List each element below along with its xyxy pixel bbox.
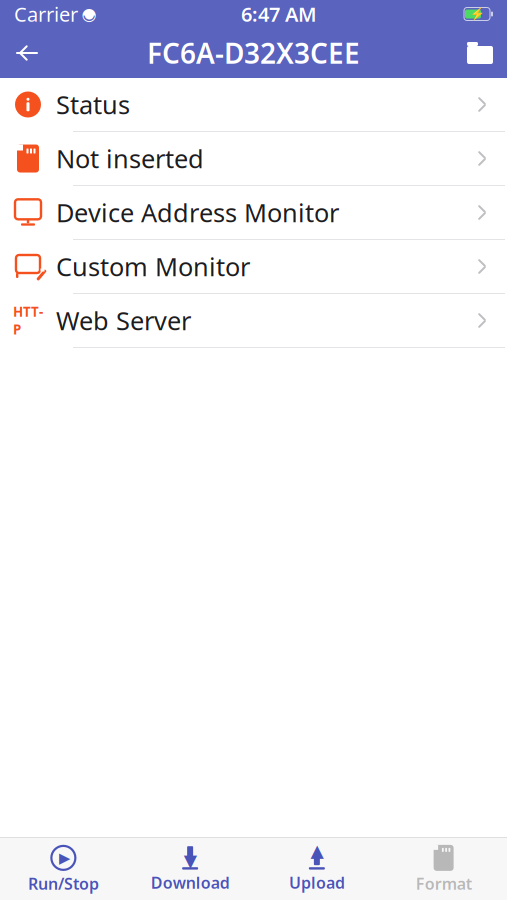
staticText: FC6A-D32X3CEE — [147, 34, 360, 72]
staticText: ▼ — [184, 851, 197, 870]
staticText: ▲ — [310, 841, 323, 860]
button[interactable]: ▲ — [253, 838, 380, 900]
staticText: Upload — [289, 872, 345, 893]
button[interactable]: Format — [380, 838, 507, 900]
staticText: Status — [56, 88, 130, 121]
button[interactable]: Status — [0, 78, 507, 132]
staticText: Device Address Monitor — [56, 196, 339, 229]
staticText: Not inserted — [56, 142, 204, 175]
staticText: Web Server — [56, 304, 191, 337]
staticText: Carrier — [14, 1, 78, 27]
button[interactable]: Back — [0, 29, 54, 77]
staticText: Custom Monitor — [56, 250, 250, 283]
staticText: ◓ — [81, 4, 96, 24]
staticText: Download — [151, 872, 230, 893]
staticText: ● — [84, 7, 94, 21]
button[interactable]: Custom Monitor — [0, 240, 507, 294]
button[interactable]: ▼ — [127, 838, 254, 900]
staticText: Run/Stop — [28, 873, 99, 894]
button[interactable]: HTTP — [0, 294, 507, 348]
staticText: HTTP — [13, 303, 43, 338]
button[interactable]: Device Address Monitor — [0, 186, 507, 240]
staticText: ▶ — [59, 850, 70, 866]
button[interactable]: Not inserted — [0, 132, 507, 186]
staticText: Format — [416, 873, 472, 894]
staticText: ⚡ — [469, 7, 484, 21]
staticText: 6:47 AM — [241, 1, 317, 27]
button[interactable]: Files — [453, 29, 507, 77]
button[interactable]: ▶ — [0, 838, 127, 900]
